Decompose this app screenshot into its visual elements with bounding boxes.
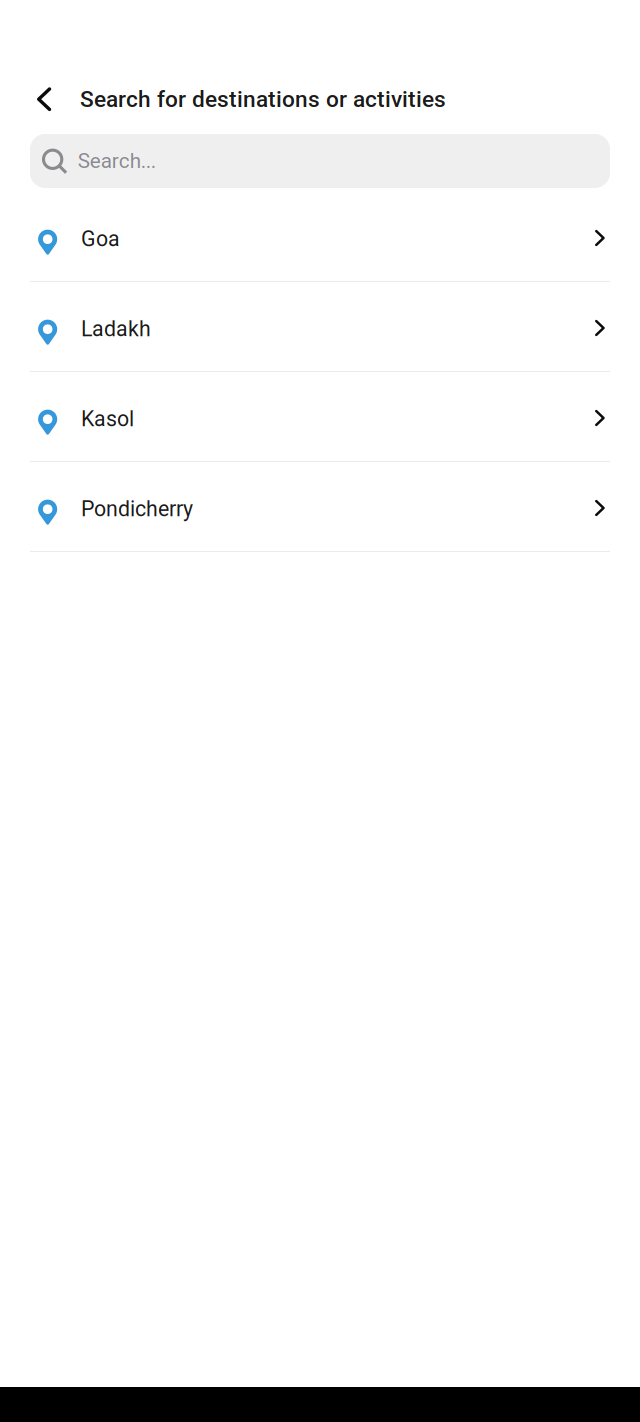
staticText: Goa bbox=[81, 226, 120, 251]
button[interactable]: Search bbox=[30, 134, 610, 188]
button[interactable]: Back bbox=[22, 77, 66, 121]
button[interactable]: Ladakh bbox=[30, 282, 610, 371]
staticText: Search for destinations or activities bbox=[80, 86, 446, 112]
button[interactable]: Goa bbox=[30, 192, 610, 281]
staticText: Kasol bbox=[81, 406, 134, 431]
button[interactable]: Pondicherry bbox=[30, 462, 610, 551]
staticText: Ladakh bbox=[81, 316, 151, 341]
button[interactable]: Kasol bbox=[30, 372, 610, 461]
staticText: Pondicherry bbox=[81, 496, 193, 521]
staticText: Search... bbox=[78, 149, 156, 173]
